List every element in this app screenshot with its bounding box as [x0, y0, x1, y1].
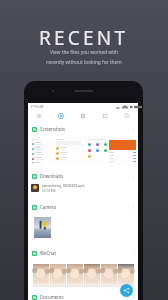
- button[interactable]: Documents: [32, 292, 135, 300]
- button[interactable]: jiaxinzheng_0030309.apk: [31, 181, 138, 195]
- staticText: WeChat: [40, 250, 57, 256]
- button[interactable]: Share: [120, 284, 133, 297]
- button[interactable]: [31, 138, 137, 164]
- staticText: Camera: [40, 204, 57, 210]
- staticText: RECENT: [39, 25, 129, 51]
- button[interactable]: Categories: [72, 110, 94, 122]
- staticText: 下午3:48: [30, 104, 44, 109]
- staticText: Documents: [40, 294, 64, 300]
- staticText: Downloads: [40, 173, 63, 179]
- button[interactable]: Search: [116, 110, 138, 122]
- button[interactable]: WeChat: [32, 248, 135, 258]
- button[interactable]: [34, 217, 51, 238]
- button[interactable]: Recent: [50, 110, 72, 122]
- button[interactable]: Files: [94, 110, 116, 122]
- staticText: jiaxinzheng_0030309.apk: [42, 183, 85, 188]
- staticText: 20.78 MB: [42, 189, 56, 193]
- button[interactable]: Menu: [28, 110, 50, 122]
- button[interactable]: Downloads: [32, 171, 135, 181]
- button[interactable]: [33, 264, 135, 287]
- button[interactable]: Camera: [32, 202, 135, 212]
- button[interactable]: Screenshots: [32, 124, 135, 134]
- staticText: View the files you worked with recently …: [46, 49, 122, 65]
- staticText: Screenshots: [40, 126, 66, 132]
